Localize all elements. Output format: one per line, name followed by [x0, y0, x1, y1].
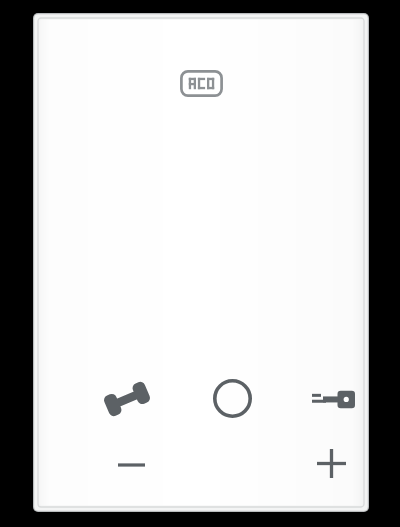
- button[interactable]: Main button: [199, 365, 265, 431]
- button[interactable]: Answer call: [91, 368, 163, 430]
- button[interactable]: Volume down: [99, 438, 163, 492]
- other: ACO logo: [180, 70, 223, 97]
- button[interactable]: Volume up: [299, 434, 363, 492]
- button[interactable]: Open door: [297, 368, 369, 430]
